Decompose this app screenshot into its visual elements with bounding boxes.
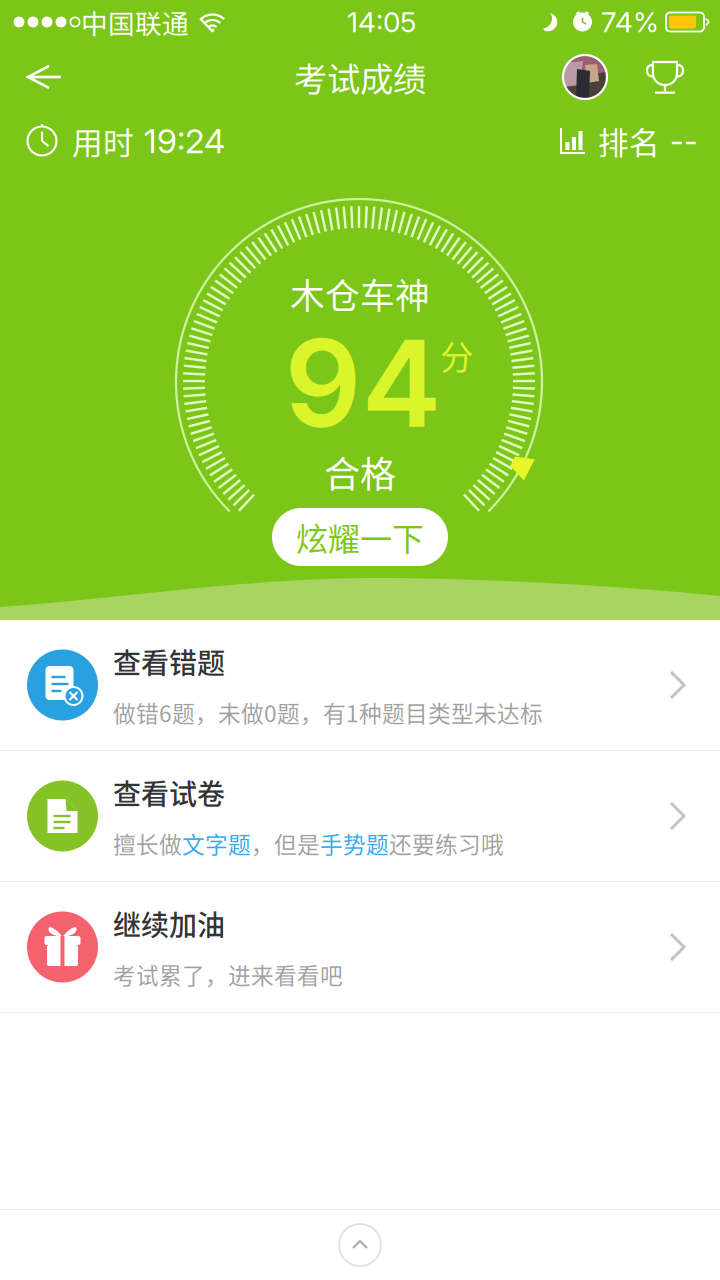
staticText: 分 [440,331,473,379]
staticText: 做错6题，未做0题，有1种题目类型未达标 [113,696,543,729]
staticText: 74% [601,5,659,39]
button[interactable]: Rankings [636,49,694,105]
staticText: 考试成绩 [294,53,426,101]
staticText: 文字题 [182,827,251,860]
staticText: ，但是 [251,827,320,860]
staticText: 14:05 [347,5,416,39]
button[interactable]: 查看试卷 [0,751,720,881]
staticText: 用时 [72,119,134,163]
staticText: 考试累了，进来看看吧 [113,958,343,991]
button[interactable]: Ranking [559,119,698,163]
staticText: 擅长做 [113,827,182,860]
button[interactable]: 继续加油 [0,882,720,1012]
staticText: 查看试卷 [113,772,225,813]
button[interactable]: Profile [556,49,614,105]
staticText: -- [670,122,698,159]
staticText: 查看错题 [113,641,225,682]
staticText: 手势题 [320,827,389,860]
staticText: 排名 [598,119,660,163]
button[interactable]: Back [14,49,76,105]
button[interactable]: 查看错题 [0,620,720,750]
staticText: 炫耀一下 [296,514,424,560]
staticText: 19:24 [144,121,225,161]
staticText: 继续加油 [113,903,225,944]
staticText: 94 [284,310,441,456]
staticText: 木仓车神 [290,269,430,319]
button[interactable]: Scroll to top [324,1210,396,1280]
staticText: 合格 [324,446,396,498]
staticText: 中国联通 [81,3,189,41]
button[interactable]: 炫耀一下 [272,508,448,566]
staticText: 还要练习哦 [389,827,504,860]
